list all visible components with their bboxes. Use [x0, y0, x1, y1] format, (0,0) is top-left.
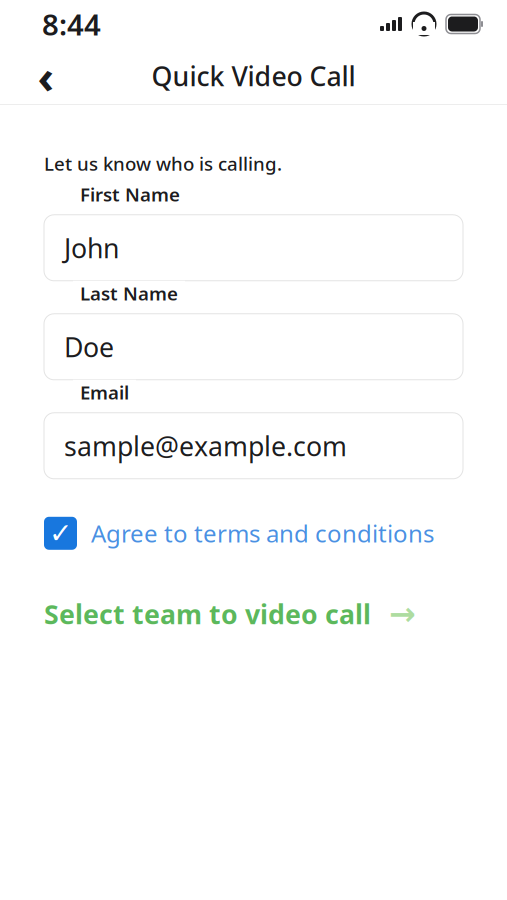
staticText: John	[64, 230, 119, 265]
button[interactable]: John	[44, 215, 463, 281]
button[interactable]: sample@example.com	[44, 413, 463, 479]
staticText: 8:44	[42, 4, 101, 43]
staticText: Select team to video call	[44, 596, 371, 632]
button[interactable]: Back	[24, 54, 68, 98]
button[interactable]: Select team to video call	[44, 596, 416, 632]
staticText: Last Name	[80, 281, 178, 306]
staticText: Doe	[64, 329, 114, 364]
button[interactable]: Doe	[44, 314, 463, 380]
staticText: sample@example.com	[64, 428, 347, 463]
staticText: Quick Video Call	[151, 58, 355, 94]
staticText: First Name	[80, 182, 180, 207]
button[interactable]: ✓	[44, 517, 434, 550]
staticText: Let us know who is calling.	[44, 151, 282, 176]
staticText: →	[389, 596, 416, 632]
staticText: Email	[80, 380, 129, 405]
staticText: Agree to terms and conditions	[91, 517, 434, 549]
staticText: ‹	[37, 46, 54, 106]
staticText: ✓	[49, 517, 72, 549]
